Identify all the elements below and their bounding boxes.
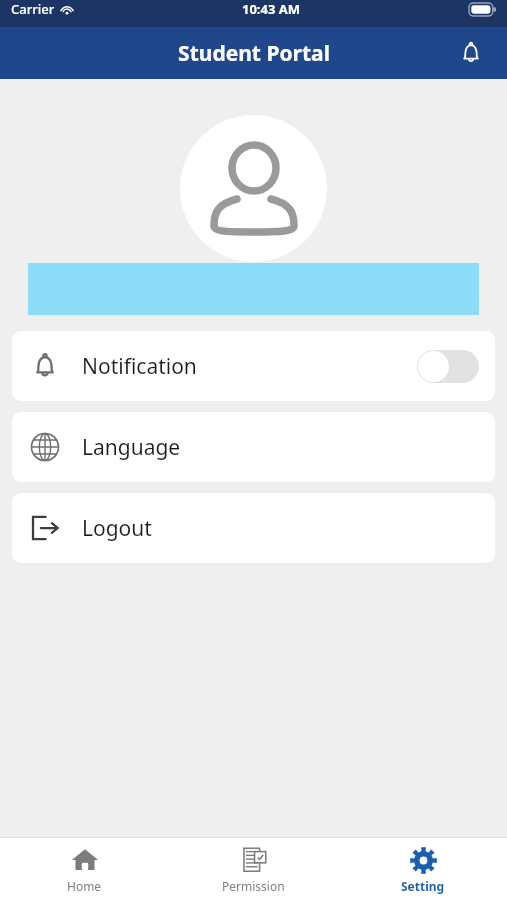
staticText: Setting — [401, 878, 445, 894]
button[interactable]: Home — [0, 838, 169, 900]
button[interactable]: Notifications — [451, 33, 491, 73]
staticText: Student Portal — [178, 39, 330, 68]
staticText: Permission — [222, 878, 285, 894]
staticText: Notification — [82, 352, 197, 381]
staticText: Logout — [82, 514, 152, 543]
button[interactable]: Setting — [338, 838, 507, 900]
staticText: 10:43 AM — [242, 0, 301, 18]
button[interactable]: Permission — [169, 838, 338, 900]
staticText: Home — [67, 878, 102, 894]
staticText: Carrier — [11, 0, 55, 18]
button[interactable]: Notification toggle — [417, 350, 479, 383]
button[interactable]: Logout — [12, 493, 495, 563]
button[interactable]: Language — [12, 412, 495, 482]
staticText: Language — [82, 433, 181, 462]
button[interactable]: Notification — [12, 331, 495, 401]
